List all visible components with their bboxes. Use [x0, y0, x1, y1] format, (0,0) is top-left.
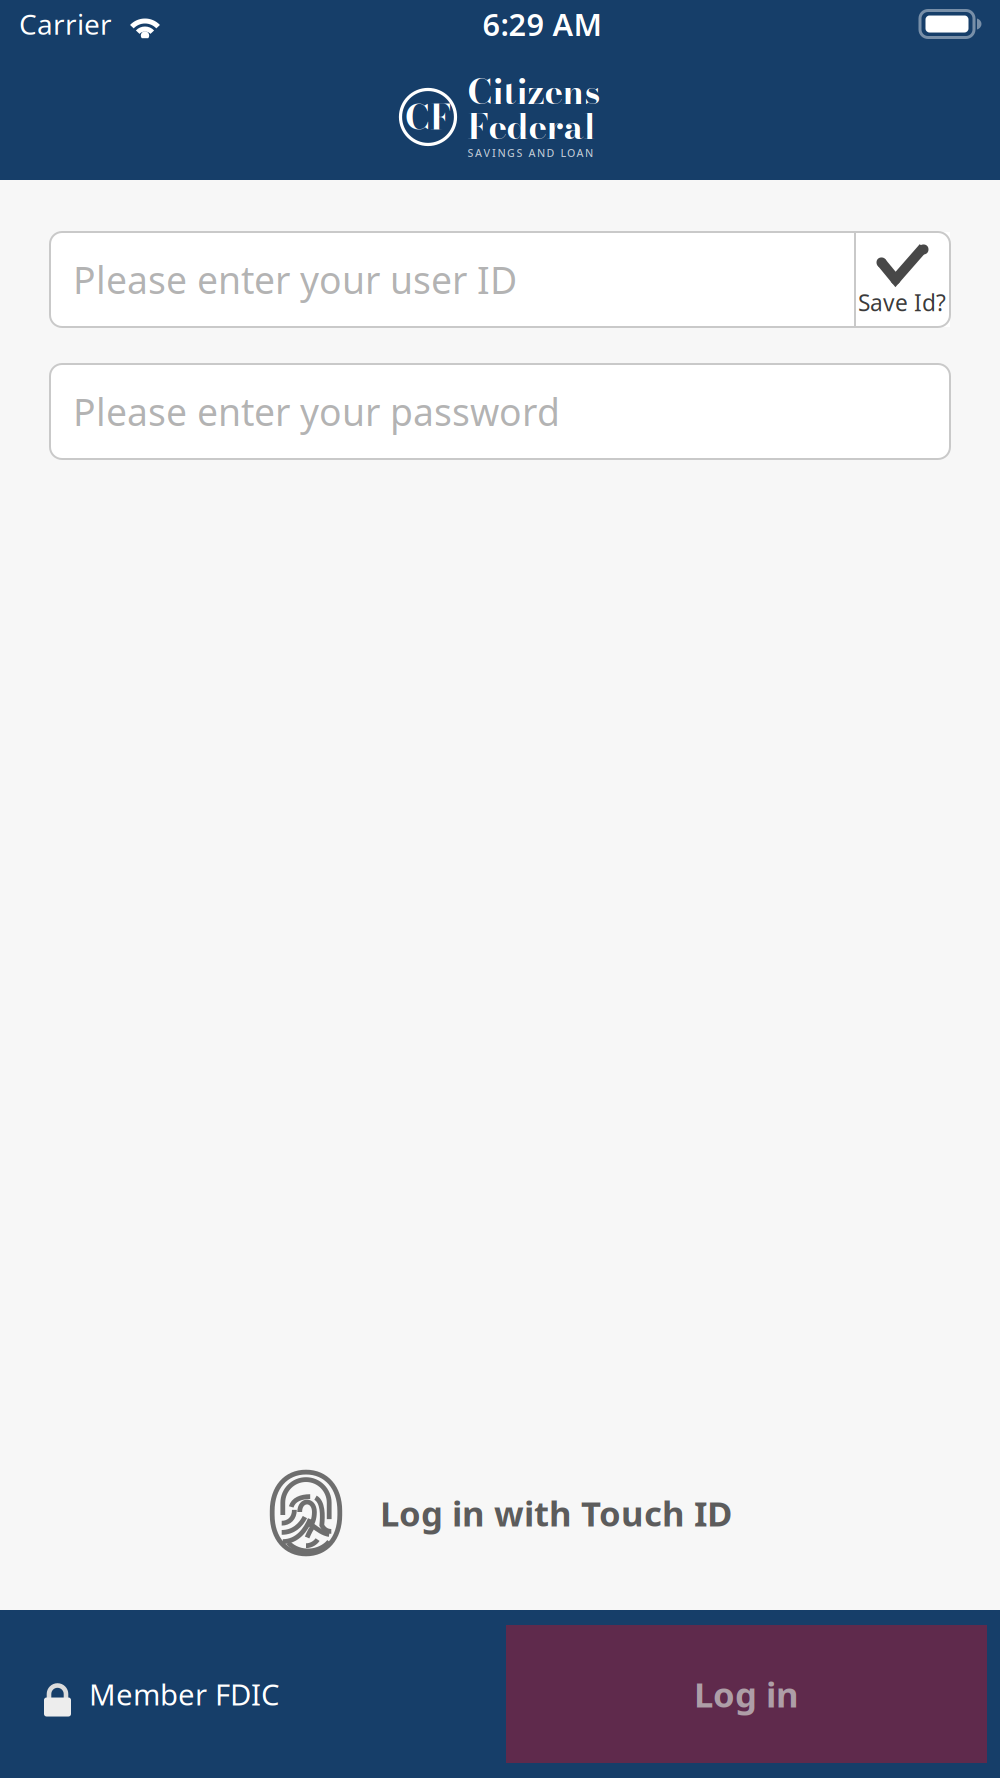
staticText: Log in with Touch ID	[380, 1490, 732, 1536]
button[interactable]: Save Id?	[854, 232, 950, 327]
staticText: Member FDIC	[89, 1674, 280, 1713]
staticText: Federal	[467, 109, 595, 144]
staticText: Log in	[694, 1671, 799, 1717]
staticText: Please enter your user ID	[73, 255, 517, 304]
button[interactable]: Log in	[506, 1625, 987, 1763]
staticText: Save Id?	[858, 287, 946, 317]
button[interactable]: Log in with Touch ID	[268, 1468, 732, 1558]
staticText: SAVINGS AND LOAN	[467, 146, 593, 160]
staticText: Citizens	[467, 74, 600, 109]
button[interactable]: Member FDIC	[0, 1674, 300, 1713]
staticText: 6:29 AM	[482, 4, 601, 44]
staticText: CF	[405, 90, 451, 143]
staticText: Carrier	[19, 5, 112, 43]
staticText: Please enter your password	[73, 387, 560, 436]
